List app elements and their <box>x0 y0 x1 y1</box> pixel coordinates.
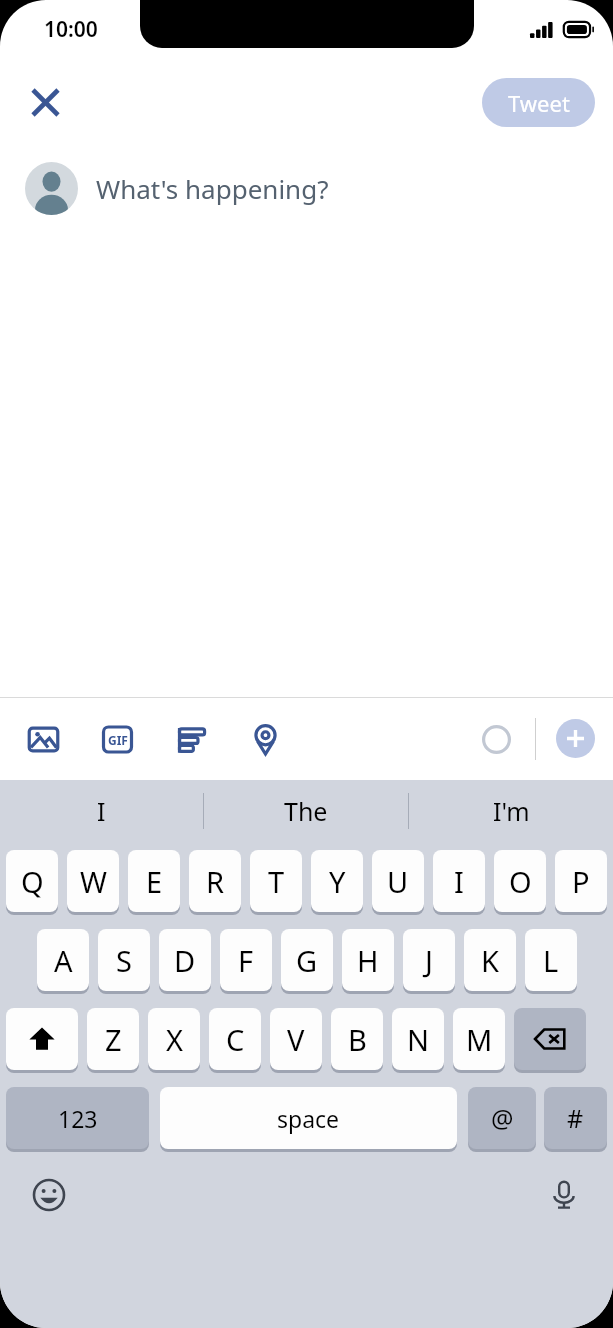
staticText: W <box>80 862 107 901</box>
staticText: G <box>296 941 318 980</box>
staticText: X <box>166 1020 183 1059</box>
button[interactable]: Tweet <box>482 78 595 127</box>
button[interactable]: P <box>555 850 607 912</box>
button[interactable]: I <box>433 850 485 912</box>
staticText: O <box>509 862 532 901</box>
button[interactable]: Z <box>87 1008 139 1070</box>
button[interactable]: L <box>525 929 577 991</box>
staticText: K <box>481 941 499 980</box>
button[interactable]: O <box>494 850 546 912</box>
button[interactable]: W <box>67 850 119 912</box>
staticText: # <box>567 1101 584 1135</box>
button[interactable]: C <box>209 1008 261 1070</box>
button[interactable]: Backspace <box>514 1008 586 1070</box>
button[interactable]: J <box>403 929 455 991</box>
staticText: F <box>238 941 254 980</box>
button[interactable]: Numbers <box>6 1087 149 1149</box>
staticText: Z <box>105 1020 122 1059</box>
button[interactable]: Emoji <box>26 1172 72 1218</box>
staticText: N <box>407 1020 430 1059</box>
staticText: L <box>543 941 559 980</box>
button[interactable]: Add photo <box>20 716 66 762</box>
staticText: GIF <box>108 732 128 748</box>
button[interactable]: E <box>128 850 180 912</box>
button[interactable]: Shift <box>6 1008 78 1070</box>
staticText: @ <box>491 1101 514 1135</box>
button[interactable]: Add poll <box>168 716 214 762</box>
staticText: The <box>284 794 328 828</box>
button[interactable]: A <box>37 929 89 991</box>
staticText: H <box>357 941 379 980</box>
button[interactable]: Close <box>18 75 72 129</box>
staticText: R <box>206 862 225 901</box>
button[interactable]: Characters remaining <box>473 716 519 762</box>
staticText: I <box>454 862 464 901</box>
button[interactable]: N <box>392 1008 444 1070</box>
button[interactable]: D <box>159 929 211 991</box>
staticText: A <box>54 941 73 980</box>
staticText: B <box>348 1020 367 1059</box>
button[interactable]: G <box>281 929 333 991</box>
staticText: Y <box>329 862 346 901</box>
button[interactable]: Dictate <box>541 1172 587 1218</box>
button[interactable]: The <box>204 780 408 842</box>
button[interactable]: K <box>464 929 516 991</box>
staticText: P <box>572 862 590 901</box>
button[interactable]: B <box>331 1008 383 1070</box>
staticText: T <box>268 862 285 901</box>
button[interactable]: Add GIF <box>94 716 140 762</box>
staticText: I'm <box>493 794 530 828</box>
button[interactable]: U <box>372 850 424 912</box>
staticText: space <box>277 1103 340 1134</box>
staticText: S <box>116 941 132 980</box>
staticText: D <box>174 941 196 980</box>
staticText: What's happening? <box>96 171 329 206</box>
button[interactable]: @ <box>468 1087 536 1149</box>
staticText: E <box>146 862 163 901</box>
button[interactable]: Add location <box>242 716 288 762</box>
button[interactable]: S <box>98 929 150 991</box>
button[interactable]: X <box>148 1008 200 1070</box>
button[interactable]: Y <box>311 850 363 912</box>
button[interactable]: Q <box>6 850 58 912</box>
staticText: I <box>97 794 106 828</box>
staticText: M <box>466 1020 493 1059</box>
staticText: 123 <box>58 1103 98 1134</box>
staticText: 10:00 <box>44 15 98 44</box>
button[interactable]: T <box>250 850 302 912</box>
button[interactable]: H <box>342 929 394 991</box>
button[interactable]: V <box>270 1008 322 1070</box>
staticText: U <box>387 862 409 901</box>
button[interactable]: M <box>453 1008 505 1070</box>
button[interactable]: # <box>544 1087 607 1149</box>
button[interactable]: Add another tweet <box>556 719 595 758</box>
staticText: Tweet <box>508 88 570 118</box>
button[interactable]: Space <box>160 1087 457 1149</box>
button[interactable]: R <box>189 850 241 912</box>
button[interactable]: I <box>0 780 203 842</box>
staticText: J <box>425 941 433 980</box>
staticText: C <box>226 1020 245 1059</box>
button[interactable]: I'm <box>409 780 613 842</box>
staticText: Q <box>21 862 44 901</box>
button[interactable]: F <box>220 929 272 991</box>
staticText: V <box>287 1020 305 1059</box>
